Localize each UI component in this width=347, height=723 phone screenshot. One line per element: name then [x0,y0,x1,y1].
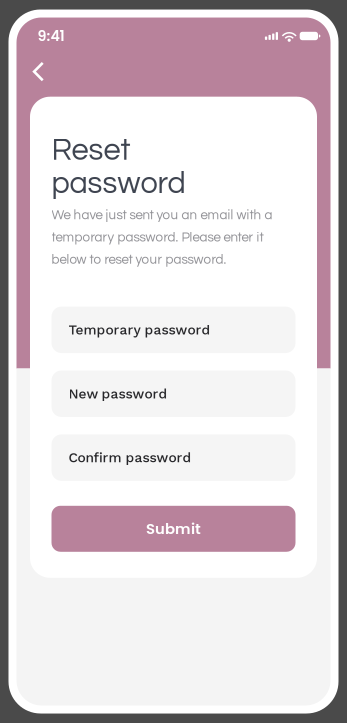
staticText: 9:41 [37,26,64,46]
button[interactable]: Submit [51,506,295,552]
button[interactable]: Temporary password [51,307,295,353]
staticText: We have just sent you an email with a te… [51,208,272,267]
staticText: Submit [146,518,201,539]
staticText: Confirm password [68,450,191,466]
staticText: Temporary password [68,322,210,338]
button[interactable]: New password [51,370,295,417]
button[interactable]: Back [16,53,58,90]
button[interactable]: Confirm password [51,434,295,481]
staticText: New password [68,386,167,402]
staticText: Reset password [51,135,185,199]
